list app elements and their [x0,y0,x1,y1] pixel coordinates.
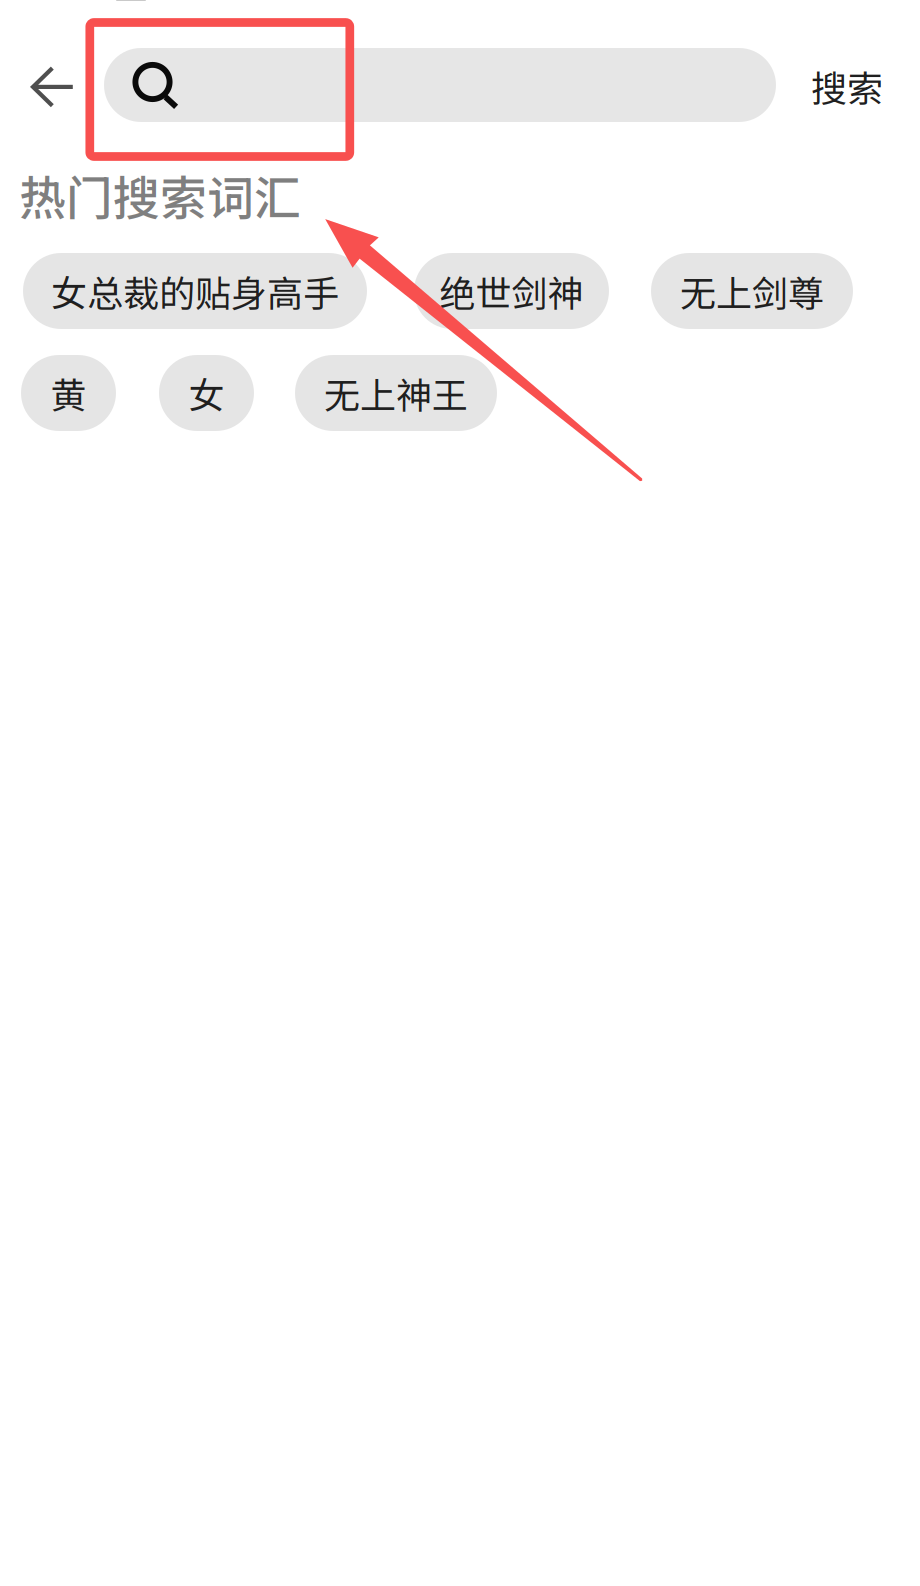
staticText: 热门搜索词汇 [19,161,301,229]
staticText: 黄 [50,367,86,419]
button[interactable]: 无上剑尊 [651,253,853,329]
button[interactable] [104,48,776,122]
staticText: 女 [188,367,224,419]
button[interactable]: 搜索 [791,49,903,123]
staticText: 绝世剑神 [439,265,583,317]
button[interactable]: 无上神王 [295,355,497,431]
button[interactable]: 绝世剑神 [414,253,609,329]
staticText: 无上神王 [324,367,468,419]
staticText: 搜索 [811,60,883,112]
button[interactable]: 返回 [8,42,98,132]
button[interactable]: 女 [159,355,254,431]
staticText: 女总裁的贴身高手 [51,265,339,317]
staticText: 无上剑尊 [680,265,824,317]
button[interactable]: 黄 [21,355,116,431]
button[interactable]: 女总裁的贴身高手 [23,253,367,329]
